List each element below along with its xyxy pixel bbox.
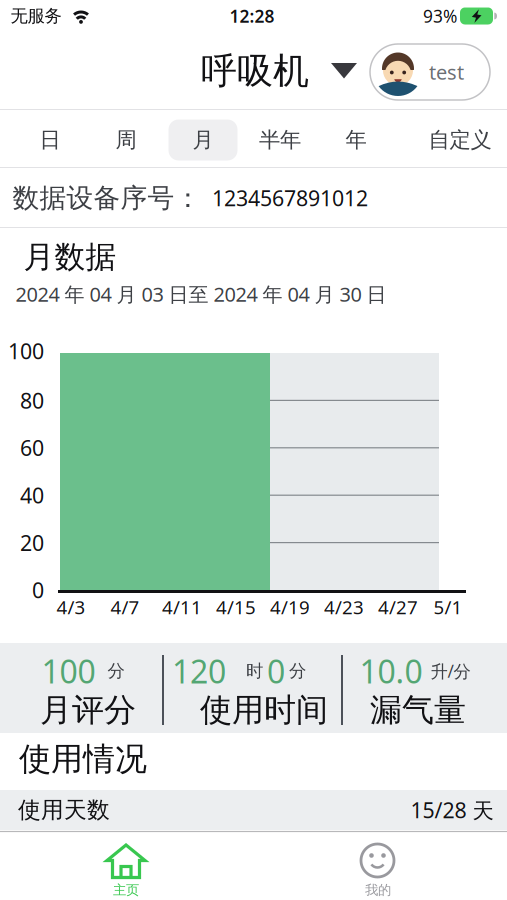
button[interactable]: 我的 <box>258 830 498 900</box>
staticText: 4/7 <box>110 595 139 619</box>
staticText: 4/19 <box>270 595 310 619</box>
staticText: 40 <box>20 481 44 509</box>
staticText: 4/3 <box>56 595 85 619</box>
staticText: 使用时间 <box>200 690 328 730</box>
button[interactable]: test <box>370 44 490 100</box>
staticText: 1234567891012 <box>212 184 368 212</box>
staticText: 10.0 <box>359 650 422 692</box>
staticText: 日 <box>39 127 60 153</box>
staticText: 半年 <box>259 127 301 153</box>
staticText: 93% <box>423 4 457 27</box>
staticText: 15/28 天 <box>410 796 493 824</box>
staticText: 年 <box>345 127 366 153</box>
staticText: 呼吸机 <box>201 49 309 93</box>
staticText: 使用情况 <box>19 739 147 779</box>
staticText: 4/23 <box>324 595 364 619</box>
staticText: 4/11 <box>162 595 202 619</box>
staticText: 12:28 <box>229 4 274 27</box>
button[interactable]: 呼吸机 <box>201 49 357 93</box>
staticText: 周 <box>115 127 136 153</box>
staticText: 100 <box>41 650 95 692</box>
staticText: 4/15 <box>216 595 256 619</box>
button[interactable]: 年 <box>326 117 386 162</box>
staticText: 80 <box>20 386 44 414</box>
staticText: 月数据 <box>23 238 116 276</box>
staticText: 自定义 <box>428 127 491 153</box>
button[interactable]: 半年 <box>245 117 315 162</box>
staticText: 0 <box>32 576 44 604</box>
staticText: 分 <box>107 660 124 682</box>
staticText: 100 <box>8 337 44 365</box>
staticText: 主页 <box>113 882 139 898</box>
staticText: 20 <box>20 528 44 557</box>
staticText: 使用天数 <box>18 796 110 824</box>
staticText: 60 <box>20 434 44 462</box>
staticText: test <box>429 59 464 85</box>
staticText: 0 <box>267 650 285 692</box>
staticText: 数据设备序号： <box>12 182 201 214</box>
staticText: 漏气量 <box>370 690 466 730</box>
button[interactable]: 周 <box>96 117 156 162</box>
button[interactable]: 日 <box>20 117 80 162</box>
staticText: 2024 年 04 月 03 日至 2024 年 04 月 30 日 <box>15 281 386 307</box>
button[interactable]: 主页 <box>6 830 246 900</box>
staticText: 我的 <box>365 882 391 898</box>
staticText: 月评分 <box>40 690 136 730</box>
staticText: 4/27 <box>378 595 418 619</box>
staticText: 月 <box>192 127 213 153</box>
staticText: 5/1 <box>433 595 462 619</box>
staticText: 120 <box>172 650 226 692</box>
staticText: 时 <box>246 660 263 682</box>
staticText: 升/分 <box>430 659 470 682</box>
button[interactable]: 自定义 <box>417 117 503 162</box>
staticText: 分 <box>289 660 306 682</box>
button[interactable]: 月 <box>168 119 237 160</box>
staticText: 无服务 <box>10 5 61 27</box>
